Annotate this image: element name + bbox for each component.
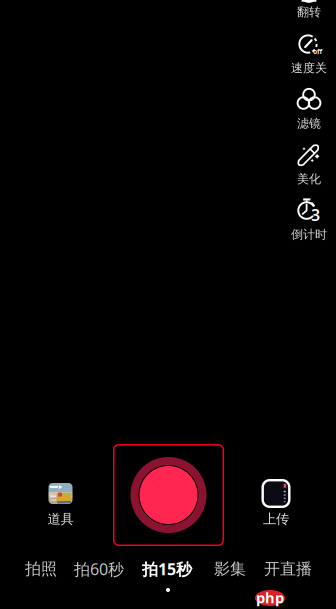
staticText: 速度关 (291, 61, 327, 75)
staticText: 美化 (297, 172, 321, 186)
button[interactable] (33, 483, 87, 504)
staticText: 开直播 (264, 559, 312, 579)
staticText: 翻转 (297, 5, 321, 19)
staticText: 滤镜 (297, 116, 321, 131)
staticText: 3 (311, 204, 320, 225)
staticText: 拍60秒 (74, 558, 124, 580)
staticText: 倒计时 (291, 227, 327, 242)
staticText: off (313, 47, 322, 56)
button[interactable]: 拍60秒 (70, 559, 128, 579)
button[interactable]: 翻转 (282, 5, 336, 19)
button[interactable]: 拍照 (21, 559, 61, 579)
button[interactable]: off (282, 34, 336, 75)
button[interactable]: 录制 (113, 444, 224, 546)
staticText: 上传 (263, 511, 289, 527)
staticText: php (256, 588, 284, 607)
button[interactable]: 开直播 (260, 559, 316, 579)
button[interactable]: 3 (282, 197, 336, 242)
button[interactable]: 美化 (282, 145, 336, 186)
button[interactable]: 滤镜 (282, 89, 336, 131)
staticText: 拍照 (25, 559, 57, 579)
staticText: 影集 (214, 559, 246, 579)
button[interactable]: 拍15秒 (138, 559, 196, 579)
staticText: 拍15秒 (142, 558, 192, 580)
button[interactable]: 影集 (210, 559, 250, 579)
button[interactable] (249, 479, 303, 508)
staticText: 道具 (47, 511, 73, 527)
